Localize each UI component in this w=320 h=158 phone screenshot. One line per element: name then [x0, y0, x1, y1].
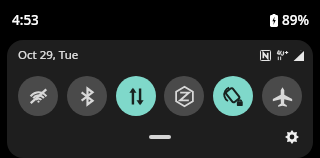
- button[interactable]: Settings: [281, 126, 303, 148]
- button[interactable]: Mobile data: [116, 76, 156, 116]
- button[interactable]: Bluetooth: [67, 76, 107, 116]
- button[interactable]: Wi-Fi off: [18, 76, 58, 116]
- staticText: 4:53: [12, 11, 39, 29]
- staticText: 89%: [282, 11, 309, 29]
- button[interactable]: Expand: [149, 135, 171, 139]
- button[interactable]: Auto-rotate locked: [213, 76, 253, 116]
- staticText: Oct 29, Tue: [18, 47, 79, 63]
- button[interactable]: Battery Saver: [164, 76, 204, 116]
- button[interactable]: Airplane mode: [262, 76, 302, 116]
